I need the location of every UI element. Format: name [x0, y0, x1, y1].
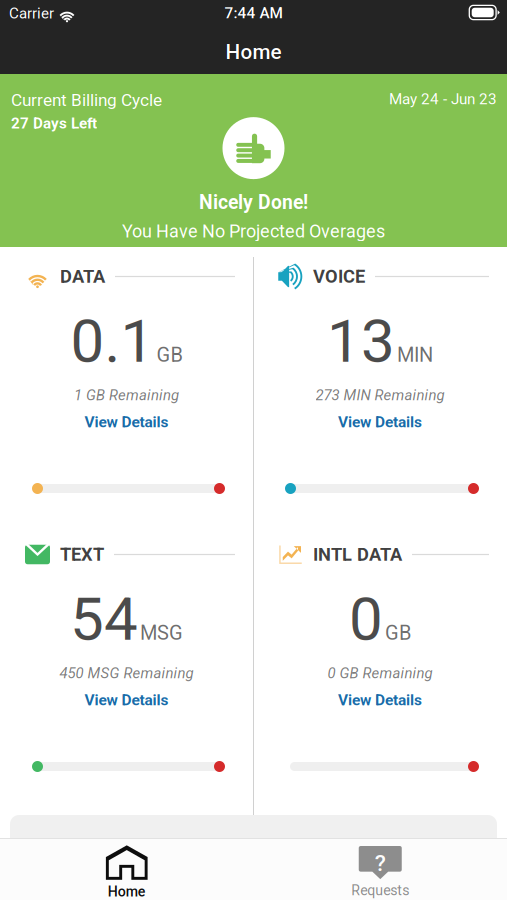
staticText: DATA: [60, 266, 105, 287]
button[interactable]: View Details: [0, 682, 253, 717]
staticText: View Details: [84, 413, 168, 431]
button[interactable]: View Details: [253, 404, 507, 439]
staticText: 273 MIN Remaining: [315, 386, 444, 404]
button[interactable]: Home: [0, 845, 253, 900]
staticText: You Have No Projected Overages: [122, 221, 385, 242]
staticText: View Details: [338, 691, 422, 709]
staticText: INTL DATA: [313, 544, 402, 565]
staticText: Carrier: [9, 4, 54, 22]
button[interactable]: View Details: [253, 682, 507, 717]
staticText: View Details: [84, 691, 168, 709]
staticText: Home: [225, 40, 281, 64]
staticText: 27 Days Left: [11, 114, 97, 132]
staticText: VOICE: [313, 266, 365, 287]
button[interactable]: View Details: [0, 404, 253, 439]
staticText: Home: [108, 883, 146, 900]
staticText: ?: [375, 850, 386, 876]
staticText: 0.1: [70, 306, 154, 376]
staticText: 0 GB Remaining: [327, 664, 432, 682]
staticText: 450 MSG Remaining: [59, 664, 193, 682]
staticText: 54: [70, 584, 138, 654]
staticText: 0: [349, 584, 383, 654]
staticText: 13: [327, 306, 395, 376]
staticText: Requests: [351, 882, 409, 899]
staticText: MSG: [140, 621, 183, 644]
staticText: 7:44 AM: [224, 4, 282, 22]
button[interactable]: ?: [253, 846, 507, 899]
staticText: 1 GB Remaining: [74, 386, 179, 404]
staticText: GB: [156, 343, 182, 366]
staticText: TEXT: [60, 544, 104, 565]
staticText: View Details: [338, 413, 422, 431]
staticText: May 24 - Jun 23: [389, 90, 497, 108]
staticText: Current Billing Cycle: [11, 90, 162, 110]
staticText: GB: [385, 621, 411, 644]
staticText: Nicely Done!: [199, 191, 308, 214]
staticText: MIN: [397, 343, 433, 366]
